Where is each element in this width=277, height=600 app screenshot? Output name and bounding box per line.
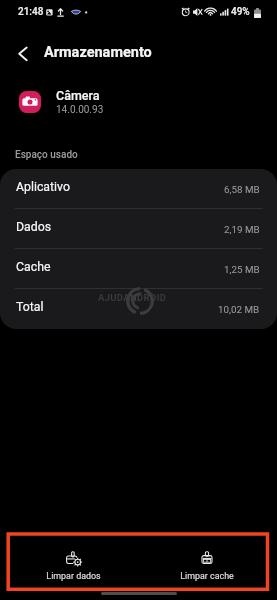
staticText: 21:48 (18, 6, 44, 18)
staticText: Cache (16, 260, 51, 274)
button[interactable]: Limpar dados (33, 551, 113, 581)
staticText: Limpar dados (46, 571, 101, 581)
staticText: Limpar cache (180, 571, 234, 581)
staticText: Dados (16, 220, 52, 234)
staticText: AJUDANDROID (98, 292, 167, 303)
button[interactable]: Cache (0, 249, 277, 289)
button[interactable]: Dados (0, 209, 277, 249)
staticText: Aplicativo (16, 180, 70, 194)
staticText: Armazenamento (44, 44, 152, 61)
button[interactable]: Back (9, 39, 37, 67)
staticText: 14.0.00.93 (56, 104, 104, 116)
staticText: 6,58 MB (224, 184, 260, 195)
button[interactable]: Aplicativo (0, 169, 277, 209)
staticText: 2,19 MB (224, 224, 260, 235)
staticText: 10,02 MB (218, 304, 260, 315)
staticText: Câmera (56, 88, 100, 103)
button[interactable]: Limpar cache (167, 551, 247, 581)
staticText: Espaço usado (15, 149, 78, 161)
staticText: 49% (231, 6, 250, 18)
button[interactable]: Total (0, 289, 277, 329)
staticText: Total (16, 300, 44, 314)
staticText: 1,25 MB (224, 264, 260, 275)
